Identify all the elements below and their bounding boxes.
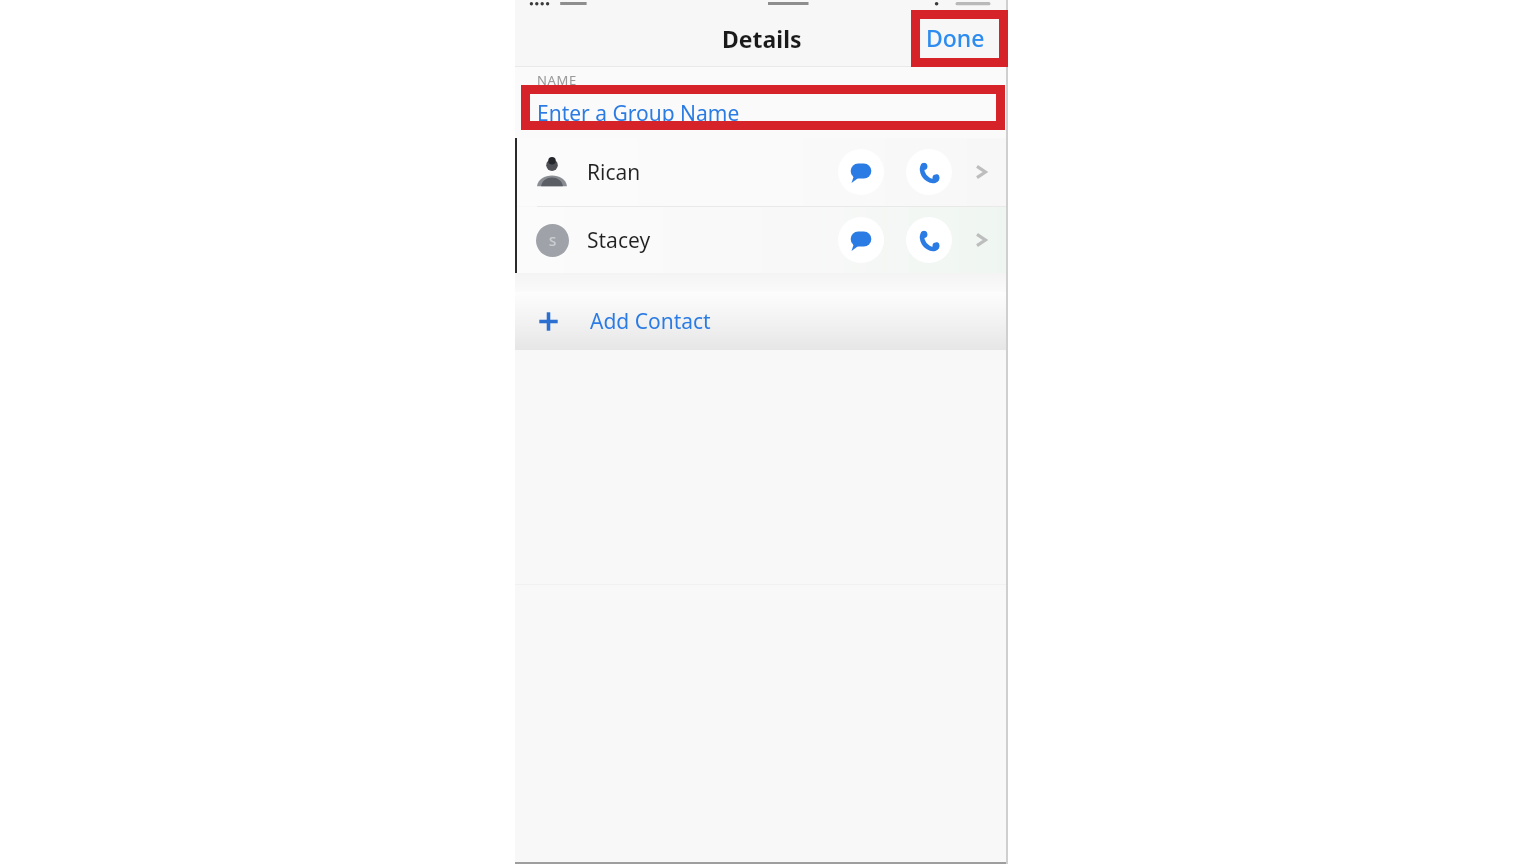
button[interactable]: Enter a Group Name xyxy=(515,93,1008,133)
button[interactable]: Add Contact xyxy=(515,292,1008,350)
staticText: Details xyxy=(722,23,802,54)
staticText: Rican xyxy=(587,158,641,187)
button[interactable]: Message Stacey xyxy=(838,217,884,263)
staticText: Done xyxy=(926,22,985,53)
button[interactable]: Call Rican xyxy=(906,149,952,195)
staticText: NAME xyxy=(537,71,578,89)
staticText: Add Contact xyxy=(590,307,711,336)
staticText: Enter a Group Name xyxy=(537,99,740,128)
button[interactable]: Done xyxy=(912,13,998,61)
staticText: S xyxy=(549,232,557,250)
button[interactable]: S xyxy=(515,207,1008,273)
button[interactable]: Call Stacey xyxy=(906,217,952,263)
button[interactable]: Contact info for Rican xyxy=(966,157,996,187)
staticText: Stacey xyxy=(587,226,651,255)
button[interactable]: Contact info for Stacey xyxy=(966,225,996,255)
button[interactable]: Rican xyxy=(515,138,1008,206)
button[interactable]: Message Rican xyxy=(838,149,884,195)
